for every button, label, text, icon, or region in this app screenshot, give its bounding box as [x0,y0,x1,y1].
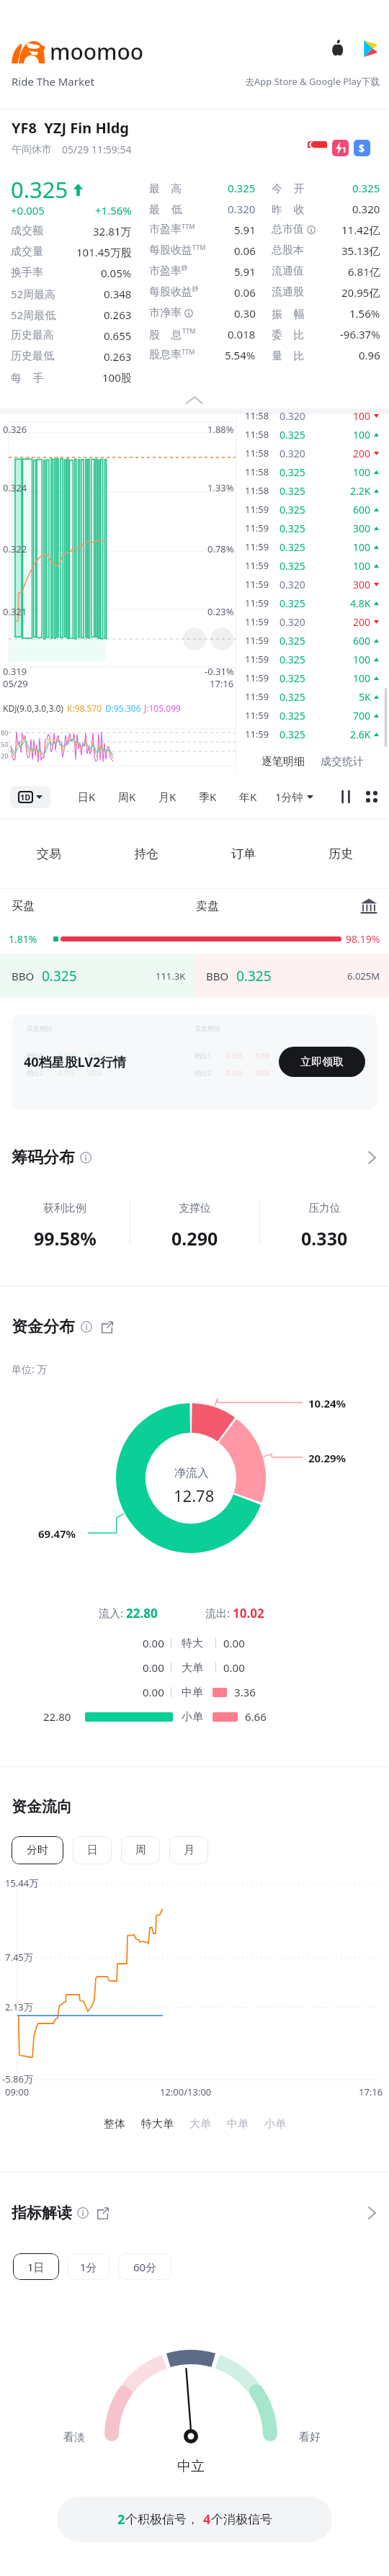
staticText: 3.36 [234,1685,256,1699]
staticText: 去App Store & Google Play下载 [245,75,380,88]
staticText: 流入: [99,1606,126,1620]
button[interactable]: 年K [228,774,268,819]
staticText: $ [359,141,365,155]
staticText: 0.325 [42,967,77,985]
staticText: 0.00 [143,1636,164,1650]
button[interactable]: 逐笔明细 [259,752,308,772]
staticText: 20.95亿 [341,285,380,300]
button[interactable]: 1D [10,786,50,808]
button[interactable]: 季K [187,774,228,819]
staticText: 11:59 [245,671,269,684]
button[interactable]: 60分 [118,2253,171,2280]
staticText: 筹码分布 [12,1148,75,1168]
staticText: 股息率 [149,348,182,362]
button[interactable]: 成交统计 [318,752,367,772]
staticText: 0.325 [280,709,305,723]
staticText: 个消极信号 [211,2512,272,2527]
button[interactable]: 特大单 [133,2113,182,2135]
staticText: 0.325 [280,728,305,741]
button[interactable]: 月 [169,1836,208,1864]
staticText: 22.80 [43,1709,71,1724]
staticText: 0.348 [104,287,132,301]
button[interactable]: Level 2 quotes [360,898,377,915]
staticText: 0.325 [11,174,68,205]
staticText: 0.325 [280,540,305,554]
staticText: 0.320 [280,578,305,591]
button[interactable]: 小单 [256,2113,294,2135]
button[interactable]: Indicators [339,790,353,804]
staticText: 0.325 [228,181,256,195]
staticText: 持仓 [134,846,158,862]
button[interactable]: 订单 [194,819,292,889]
button[interactable]: 筹码分布 [0,1118,389,1187]
staticText: 11:59 [245,522,269,535]
staticText: 0.325 [280,522,305,535]
staticText: -96.37% [340,327,380,341]
staticText: 委 比 [272,327,305,341]
staticText: 100 [353,540,371,554]
staticText: 5.54% [225,348,256,362]
button[interactable]: 分时 [12,1836,63,1864]
staticText: 每 手 [11,370,44,385]
staticText: 100 [353,671,371,685]
staticText: 0.06 [234,285,256,300]
staticText: moomoo [50,37,144,66]
button[interactable]: 历史 [292,819,389,889]
button[interactable]: 大单 [182,2113,219,2135]
staticText: 档位1 [194,1051,212,1060]
staticText: 流出: [205,1606,233,1620]
staticText: D:95.306 [105,702,141,714]
staticText: 35.13亿 [341,243,380,258]
staticText: 4.8K [350,596,371,610]
button[interactable]: 持仓 [97,819,194,889]
button[interactable]: Share [101,1321,113,1333]
staticText: 20.29% [308,1451,346,1465]
button[interactable]: 周K [107,774,147,819]
staticText: 1200 [255,1051,270,1060]
staticText: 分时 [27,1843,48,1857]
button[interactable]: 买盘档位 [12,1014,377,1109]
button[interactable]: 立即领取 [279,1047,365,1077]
staticText: 0.325 [280,634,305,648]
button[interactable]: 1日 [13,2253,59,2280]
staticText: 0.320 [352,202,380,216]
button[interactable]: 日 [73,1836,112,1864]
staticText: 1000 [87,1051,102,1060]
staticText: 11:58 [245,447,269,460]
button[interactable]: 交易 [0,819,97,889]
staticText: 11:59 [245,653,269,666]
button[interactable]: More charts [365,790,379,804]
button[interactable]: 1分 [68,2253,109,2280]
staticText: 10.24% [308,1396,346,1410]
staticText: 12.78 [174,1485,215,1506]
button[interactable]: Share [97,2207,109,2219]
staticText: 0.00 [143,1685,164,1699]
staticText: 15.44万 [5,1877,39,1889]
button[interactable]: 1分钟 [272,790,316,804]
staticText: 7.45万 [5,1951,33,1964]
button[interactable]: More [368,2206,376,2219]
staticText: 卖盘档位 [194,1024,220,1032]
staticText: 历史最低 [11,349,54,363]
staticText: 0.321 [3,605,27,618]
button[interactable]: 周 [121,1836,160,1864]
staticText: 0.96 [359,348,380,362]
staticText: 1.88% [207,423,234,436]
staticText: 股 息 [149,327,182,341]
staticText: 总股本 [272,243,304,257]
button[interactable]: 日K [66,774,107,819]
staticText: 40档星股LV2行情 [24,1053,127,1071]
staticText: 200 [353,615,371,629]
button[interactable]: 2 [57,2497,332,2542]
button[interactable]: 月K [147,774,187,819]
staticText: 0.325 [280,484,305,498]
button[interactable]: 整体 [96,2113,133,2135]
staticText: 0.018 [228,327,256,341]
staticText: 600 [353,634,371,648]
staticText: 09:00 [5,2085,30,2098]
button[interactable]: 中单 [219,2113,256,2135]
button[interactable]: Collapse [186,396,203,404]
staticText: 换手率 [11,266,43,279]
staticText: 0.320 [280,615,305,629]
staticText: 6.025M [347,970,380,983]
